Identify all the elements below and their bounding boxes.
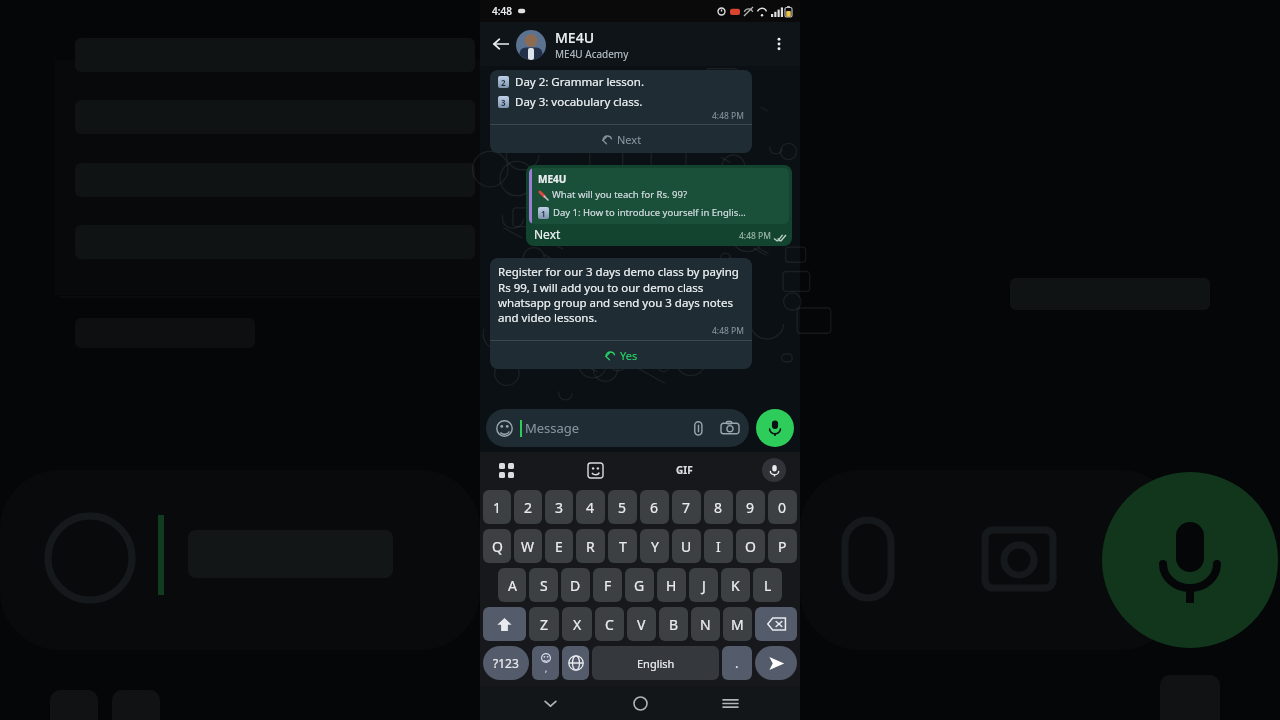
button[interactable]: Voice input: [762, 458, 786, 482]
button[interactable]: Backspace: [755, 607, 797, 641]
button[interactable]: Attach: [690, 420, 707, 437]
button[interactable]: Recent apps: [710, 686, 750, 720]
staticText: P: [778, 537, 787, 556]
button[interactable]: 6: [640, 490, 669, 524]
staticText: English: [637, 656, 675, 671]
button[interactable]: Home: [620, 686, 660, 720]
button[interactable]: English: [592, 646, 719, 680]
button[interactable]: GIF: [672, 459, 697, 481]
button[interactable]: T: [608, 529, 637, 563]
staticText: GIF: [676, 463, 693, 477]
staticText: J: [702, 576, 706, 595]
button[interactable]: L: [753, 568, 782, 602]
button[interactable]: Hide keyboard: [530, 686, 570, 720]
staticText: Q: [492, 537, 503, 556]
button[interactable]: D: [561, 568, 590, 602]
staticText: C: [605, 615, 614, 634]
staticText: Message: [525, 419, 690, 437]
button[interactable]: W: [514, 529, 542, 563]
button[interactable]: V: [627, 607, 656, 641]
button[interactable]: 5: [608, 490, 637, 524]
staticText: 1: [541, 208, 546, 219]
button[interactable]: More options: [764, 29, 794, 59]
button[interactable]: Camera: [721, 419, 739, 437]
button[interactable]: ME4U: [529, 168, 789, 224]
button[interactable]: ME4U: [516, 28, 764, 61]
button[interactable]: Back: [486, 29, 516, 59]
button[interactable]: Voice message: [756, 409, 794, 447]
button[interactable]: F: [593, 568, 622, 602]
staticText: T: [619, 537, 627, 556]
staticText: L: [764, 576, 772, 595]
button[interactable]: H: [657, 568, 686, 602]
staticText: 4:48 PM: [712, 110, 744, 122]
button[interactable]: A: [498, 568, 526, 602]
button[interactable]: P: [768, 529, 797, 563]
staticText: X: [573, 615, 582, 634]
button[interactable]: U: [672, 529, 701, 563]
button[interactable]: 8: [704, 490, 733, 524]
button[interactable]: Stickers: [583, 458, 607, 482]
staticText: S: [540, 576, 548, 595]
button[interactable]: X: [562, 607, 592, 641]
staticText: D: [570, 576, 581, 595]
button[interactable]: 7: [672, 490, 701, 524]
staticText: F: [604, 576, 612, 595]
button[interactable]: J: [689, 568, 718, 602]
button[interactable]: ?123: [483, 646, 529, 680]
staticText: H: [666, 576, 677, 595]
staticText: U: [681, 537, 692, 556]
button[interactable]: 2: [514, 490, 542, 524]
staticText: 3: [555, 498, 564, 517]
button[interactable]: M: [723, 607, 752, 641]
staticText: Day 2: Grammar lesson.: [515, 74, 645, 90]
button[interactable]: 3: [545, 490, 573, 524]
staticText: What will you teach for Rs. 99?: [552, 188, 688, 201]
button[interactable]: C: [595, 607, 624, 641]
button[interactable]: .: [722, 646, 752, 680]
button[interactable]: Message: [486, 409, 749, 447]
button[interactable]: 1: [483, 490, 511, 524]
button[interactable]: Send: [755, 646, 797, 680]
staticText: 4:48 PM: [739, 230, 771, 242]
button[interactable]: 4: [576, 490, 605, 524]
button[interactable]: Emoji: [532, 646, 559, 680]
button[interactable]: 9: [736, 490, 765, 524]
button[interactable]: Menu: [494, 458, 518, 482]
button[interactable]: N: [691, 607, 720, 641]
staticText: R: [586, 537, 595, 556]
staticText: Register for our 3 days demo class by pa…: [498, 264, 744, 325]
staticText: Z: [540, 615, 549, 634]
button[interactable]: G: [625, 568, 654, 602]
staticText: K: [731, 576, 740, 595]
staticText: 0: [778, 498, 787, 517]
button[interactable]: Yes: [490, 341, 752, 369]
staticText: Day 3: vocabulary class.: [515, 94, 643, 110]
button[interactable]: Z: [529, 607, 559, 641]
staticText: ,: [545, 663, 548, 674]
staticText: 6: [650, 498, 659, 517]
button[interactable]: I: [704, 529, 733, 563]
staticText: E: [555, 537, 563, 556]
staticText: 7: [682, 498, 691, 517]
staticText: M: [731, 615, 744, 634]
button[interactable]: Next: [490, 125, 752, 153]
button[interactable]: Shift: [483, 607, 526, 641]
staticText: ME4U Academy: [555, 47, 629, 61]
staticText: ME4U: [538, 172, 567, 186]
staticText: .: [735, 654, 739, 672]
button[interactable]: Y: [640, 529, 669, 563]
staticText: ME4U: [555, 28, 594, 47]
staticText: 3: [501, 97, 506, 108]
staticText: Next: [534, 226, 739, 242]
button[interactable]: E: [545, 529, 573, 563]
button[interactable]: R: [576, 529, 605, 563]
button[interactable]: B: [659, 607, 688, 641]
button[interactable]: S: [529, 568, 558, 602]
button[interactable]: Change language: [562, 646, 589, 680]
button[interactable]: O: [736, 529, 765, 563]
button[interactable]: 0: [768, 490, 797, 524]
staticText: 5: [618, 498, 627, 517]
button[interactable]: Q: [483, 529, 511, 563]
button[interactable]: K: [721, 568, 750, 602]
